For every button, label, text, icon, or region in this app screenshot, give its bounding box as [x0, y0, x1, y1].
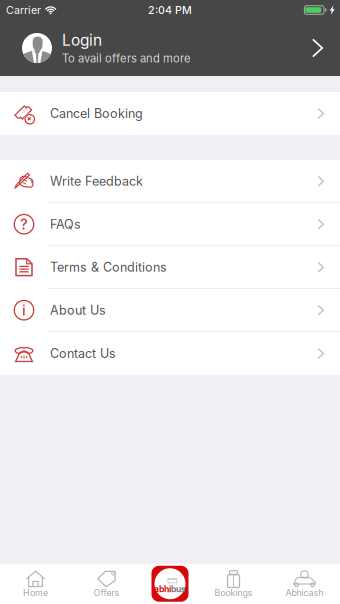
staticText: Abhicash: [285, 587, 323, 598]
staticText: Terms & Conditions: [50, 260, 167, 275]
staticText: To avail offers and more: [62, 52, 191, 65]
staticText: About Us: [50, 303, 106, 318]
button[interactable]: Write Feedback: [0, 160, 340, 203]
button[interactable]: Terms & Conditions: [0, 246, 340, 289]
button[interactable]: i: [0, 289, 340, 332]
staticText: FAQs: [50, 217, 81, 232]
staticText: abhi: [154, 584, 171, 594]
button[interactable]: Cancel Booking: [0, 92, 340, 135]
button[interactable]: abhibus Home: [142, 563, 198, 604]
button[interactable]: Home: [0, 563, 71, 604]
button[interactable]: Login: [0, 20, 340, 76]
staticText: Offers: [93, 587, 119, 598]
staticText: Carrier: [6, 3, 41, 16]
staticText: bus: [171, 584, 186, 594]
button[interactable]: Bookings: [198, 563, 269, 604]
button[interactable]: Contact Us: [0, 332, 340, 375]
button[interactable]: Abhicash: [269, 563, 340, 604]
staticText: Bookings: [214, 587, 252, 598]
button[interactable]: ?: [0, 203, 340, 246]
staticText: Home: [23, 587, 48, 598]
staticText: i: [22, 301, 26, 319]
staticText: Cancel Booking: [50, 106, 143, 121]
button[interactable]: Offers: [71, 563, 142, 604]
staticText: Write Feedback: [50, 174, 143, 189]
staticText: Contact Us: [50, 346, 116, 361]
staticText: 2:04 PM: [148, 3, 192, 16]
staticText: ?: [20, 215, 28, 233]
staticText: Login: [62, 31, 102, 50]
